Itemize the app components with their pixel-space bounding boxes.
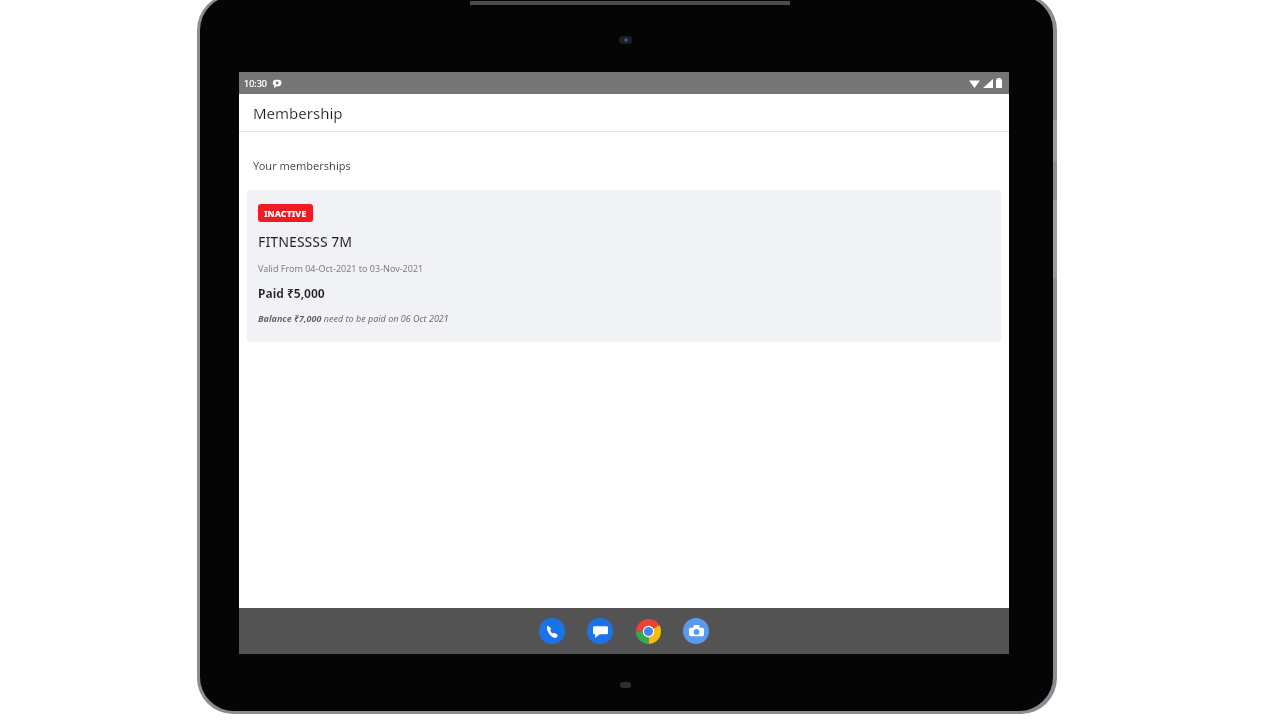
- staticText: 10:30: [244, 77, 268, 89]
- button[interactable]: Chrome: [635, 618, 661, 644]
- staticText: Paid ₹5,000: [258, 285, 325, 301]
- staticText: Valid From 04-Oct-2021 to 03-Nov-2021: [258, 262, 424, 274]
- button[interactable]: Messages: [587, 618, 613, 644]
- staticText: INACTIVE: [264, 207, 307, 219]
- staticText: Your memberships: [253, 158, 351, 173]
- staticText: Membership: [253, 103, 343, 123]
- staticText: Diet & Workout: [595, 633, 653, 644]
- button[interactable]: Membership: [460, 612, 546, 653]
- button[interactable]: Phone: [539, 618, 565, 644]
- staticText: Balance ₹7,000 need to be paid on 06 Oct…: [258, 312, 449, 324]
- button[interactable]: INACTIVE: [247, 190, 1001, 342]
- button[interactable]: Diet & Workout: [581, 612, 667, 653]
- button[interactable]: Camera: [683, 618, 709, 644]
- button[interactable]: Profile: [702, 612, 788, 653]
- staticText: FITNESSSS 7M: [258, 232, 353, 251]
